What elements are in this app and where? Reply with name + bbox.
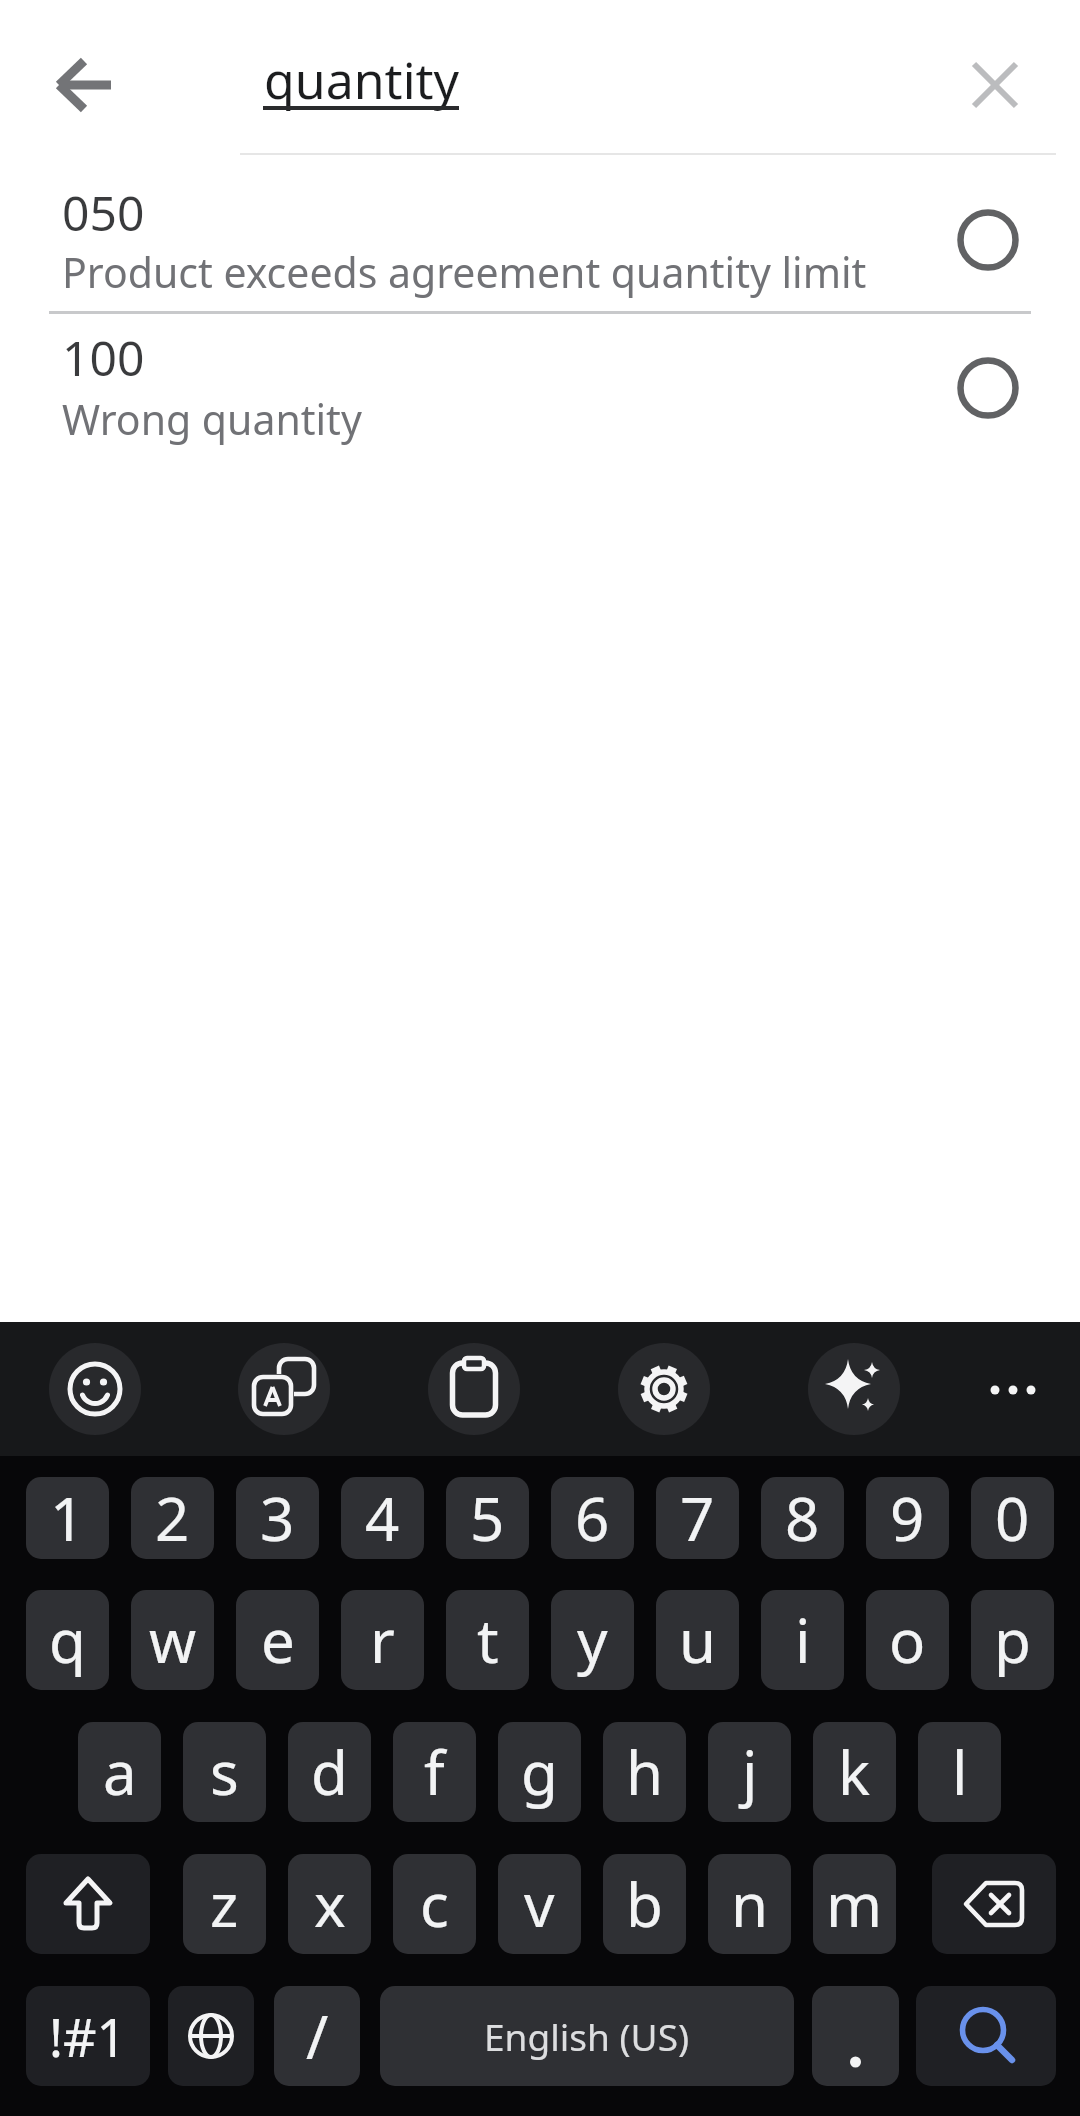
staticText: 1	[50, 1477, 85, 1559]
staticText: 8	[785, 1477, 820, 1559]
button[interactable]	[26, 1854, 150, 1954]
staticText: 0	[995, 1477, 1030, 1559]
staticText: h	[626, 1731, 664, 1813]
button[interactable]	[238, 1343, 330, 1435]
button[interactable]: 1	[26, 1477, 109, 1559]
button[interactable]: !#1	[26, 1986, 150, 2086]
button[interactable]: a	[78, 1722, 161, 1822]
button[interactable]: o	[866, 1590, 949, 1690]
button[interactable]: 6	[551, 1477, 634, 1559]
button[interactable]: j	[708, 1722, 791, 1822]
button[interactable]: 050	[0, 162, 1080, 312]
staticText: 5	[470, 1477, 505, 1559]
button[interactable]	[428, 1343, 520, 1435]
button[interactable]: 4	[341, 1477, 424, 1559]
staticText: b	[626, 1863, 663, 1945]
staticText: z	[210, 1863, 239, 1945]
button[interactable]: 0	[971, 1477, 1054, 1559]
staticText: 100	[62, 325, 145, 390]
button[interactable]: u	[656, 1590, 739, 1690]
button[interactable]: d	[288, 1722, 371, 1822]
staticText: n	[731, 1863, 769, 1945]
button[interactable]	[812, 1986, 899, 2086]
button[interactable]: v	[498, 1854, 581, 1954]
button[interactable]: f	[393, 1722, 476, 1822]
staticText: c	[420, 1863, 449, 1945]
button[interactable]: w	[131, 1590, 214, 1690]
staticText: x	[314, 1863, 346, 1945]
button[interactable]: g	[498, 1722, 581, 1822]
button[interactable]: z	[183, 1854, 266, 1954]
staticText: w	[149, 1599, 197, 1681]
staticText: 9	[890, 1477, 925, 1559]
button[interactable]: 7	[656, 1477, 739, 1559]
staticText: 3	[260, 1477, 295, 1559]
staticText: u	[679, 1599, 717, 1681]
button[interactable]: r	[341, 1590, 424, 1690]
button[interactable]: t	[446, 1590, 529, 1690]
staticText: y	[577, 1599, 608, 1681]
staticText: 4	[365, 1477, 400, 1559]
staticText: m	[826, 1863, 883, 1945]
staticText: i	[795, 1599, 811, 1681]
button[interactable]: l	[918, 1722, 1001, 1822]
button[interactable]: k	[813, 1722, 896, 1822]
staticText: j	[742, 1731, 758, 1813]
button[interactable]	[965, 1355, 1061, 1425]
button[interactable]	[955, 45, 1035, 125]
button[interactable]: 8	[761, 1477, 844, 1559]
staticText: !#1	[49, 2001, 127, 2072]
staticText: l	[952, 1731, 968, 1813]
staticText: f	[424, 1731, 445, 1813]
button[interactable]: 2	[131, 1477, 214, 1559]
button[interactable]: e	[236, 1590, 319, 1690]
button[interactable]: n	[708, 1854, 791, 1954]
staticText: g	[521, 1731, 558, 1813]
staticText: e	[261, 1599, 295, 1681]
staticText: d	[311, 1731, 348, 1813]
button[interactable]	[168, 1986, 254, 2086]
staticText: p	[994, 1599, 1031, 1681]
staticText: r	[370, 1599, 395, 1681]
staticText: s	[210, 1731, 239, 1813]
button[interactable]: x	[288, 1854, 371, 1954]
button[interactable]: h	[603, 1722, 686, 1822]
button[interactable]	[808, 1343, 900, 1435]
button[interactable]	[49, 1343, 141, 1435]
staticText: 7	[680, 1477, 715, 1559]
staticText: /	[306, 1995, 329, 2077]
staticText: t	[477, 1599, 499, 1681]
button[interactable]: s	[183, 1722, 266, 1822]
staticText: English (US)	[484, 2011, 690, 2061]
staticText: a	[103, 1731, 137, 1813]
button[interactable]: q	[26, 1590, 109, 1690]
button[interactable]: y	[551, 1590, 634, 1690]
button[interactable]: b	[603, 1854, 686, 1954]
staticText: quantity	[264, 46, 460, 114]
staticText: v	[524, 1863, 555, 1945]
button[interactable]: c	[393, 1854, 476, 1954]
button[interactable]	[916, 1986, 1056, 2086]
staticText: 2	[155, 1477, 190, 1559]
staticText: k	[838, 1731, 871, 1813]
staticText: 6	[575, 1477, 610, 1559]
button[interactable]: p	[971, 1590, 1054, 1690]
button[interactable]: 100	[0, 314, 1080, 459]
button[interactable]	[932, 1854, 1056, 1954]
staticText: o	[889, 1599, 926, 1681]
button[interactable]	[40, 40, 130, 130]
button[interactable]: /	[274, 1986, 360, 2086]
button[interactable]: 5	[446, 1477, 529, 1559]
staticText: Product exceeds agreement quantity limit	[62, 244, 867, 300]
button[interactable]: English (US)	[380, 1986, 794, 2086]
button[interactable]	[618, 1343, 710, 1435]
button[interactable]: 3	[236, 1477, 319, 1559]
staticText: q	[49, 1599, 86, 1681]
button[interactable]: 9	[866, 1477, 949, 1559]
button[interactable]: m	[813, 1854, 896, 1954]
staticText: 050	[62, 180, 145, 245]
staticText: Wrong quantity	[62, 391, 362, 447]
button[interactable]: i	[761, 1590, 844, 1690]
